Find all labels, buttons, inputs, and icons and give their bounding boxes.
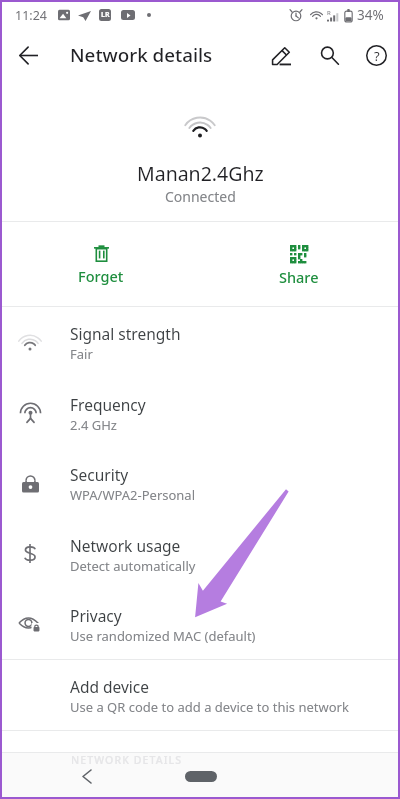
button[interactable]: Share <box>200 222 398 306</box>
button[interactable]: Back <box>6 33 50 77</box>
button[interactable]: Forget <box>2 222 200 306</box>
staticText: R <box>327 9 331 17</box>
staticText: WPA/WPA2-Personal <box>70 486 196 504</box>
button[interactable]: Search <box>308 34 350 76</box>
staticText: Use a QR code to add a device to this ne… <box>70 698 349 716</box>
staticText: 34% <box>357 6 384 24</box>
button[interactable]: Privacy <box>2 589 398 659</box>
button[interactable]: Edit <box>260 34 302 76</box>
staticText: Security <box>70 464 129 485</box>
staticText: ? <box>374 47 380 65</box>
staticText: NETWORK DETAILS <box>71 753 183 767</box>
staticText: Privacy <box>70 605 122 626</box>
button[interactable]: Home <box>185 771 217 782</box>
staticText: Fair <box>70 345 93 363</box>
staticText: Detect automatically <box>70 557 196 575</box>
button[interactable]: Network usage <box>2 519 398 589</box>
button[interactable]: Back <box>77 766 97 786</box>
staticText: Use randomized MAC (default) <box>70 627 256 645</box>
staticText: Signal strength <box>70 323 181 344</box>
staticText: Forget <box>78 266 124 286</box>
button[interactable]: Add device <box>2 660 398 730</box>
staticText: LR <box>101 10 110 20</box>
button[interactable]: Frequency <box>2 378 398 448</box>
staticText: Connected <box>165 187 236 206</box>
button[interactable]: Help <box>355 34 397 76</box>
staticText: 2.4 GHz <box>70 416 117 434</box>
staticText: 11:24 <box>15 7 47 24</box>
staticText: Manan2.4Ghz <box>137 160 264 187</box>
staticText: Frequency <box>70 394 146 415</box>
staticText: Share <box>279 267 319 287</box>
button[interactable]: Signal strength <box>2 307 398 378</box>
staticText: Network details <box>70 42 213 68</box>
staticText: Network usage <box>70 535 181 556</box>
button[interactable]: Security <box>2 448 398 519</box>
staticText: Add device <box>70 676 150 697</box>
